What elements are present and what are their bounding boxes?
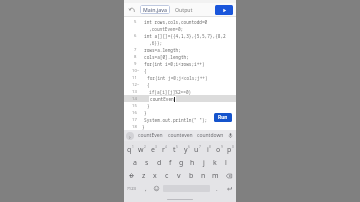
button[interactable]: Undo <box>127 5 137 15</box>
button[interactable]: x <box>149 169 161 182</box>
staticText: for(int i=0;i<rows;i++) <box>144 61 205 67</box>
staticText: 5 <box>134 19 137 25</box>
button[interactable]: c <box>161 169 173 182</box>
staticText: if(a[i][j]%2==0) <box>149 89 192 95</box>
staticText: o <box>216 145 221 155</box>
staticText: 5 <box>176 145 178 149</box>
button[interactable]: ?123 <box>124 182 140 195</box>
staticText: f <box>169 158 172 168</box>
staticText: 8 <box>134 54 137 60</box>
staticText: . <box>216 185 218 193</box>
staticText: Output <box>175 6 193 13</box>
staticText: › <box>129 133 131 140</box>
button[interactable]: , <box>140 182 151 195</box>
button[interactable]: g <box>176 156 187 169</box>
staticText: − <box>137 82 140 87</box>
staticText: Run <box>218 114 228 121</box>
button[interactable]: v <box>173 169 185 182</box>
button[interactable]: m <box>209 169 221 182</box>
staticText: l <box>225 158 227 168</box>
staticText: { <box>147 82 150 88</box>
button[interactable]: a <box>129 156 141 169</box>
button[interactable]: d <box>153 156 165 169</box>
staticText: q <box>127 145 132 155</box>
button[interactable]: y <box>181 143 192 156</box>
staticText: h <box>190 158 195 168</box>
staticText: 16 <box>132 110 137 116</box>
button[interactable]: r <box>159 143 170 156</box>
button[interactable]: Run <box>215 5 233 15</box>
staticText: 0 <box>232 145 234 149</box>
staticText: 2 <box>144 145 146 149</box>
button[interactable]: k <box>209 156 220 169</box>
staticText: 14 <box>132 96 137 102</box>
button[interactable]: Run <box>214 113 232 122</box>
staticText: z <box>142 171 146 181</box>
button[interactable]: j <box>198 156 209 169</box>
staticText: 11 <box>132 75 137 81</box>
staticText: r <box>162 145 165 155</box>
staticText: v <box>177 171 181 181</box>
staticText: b <box>189 171 194 181</box>
staticText: 6 <box>188 145 190 149</box>
staticText: ?123 <box>127 186 137 192</box>
staticText: ,6}}; <box>149 40 163 46</box>
staticText: } <box>147 103 150 109</box>
staticText: w <box>138 145 144 155</box>
staticText: y <box>184 145 188 155</box>
staticText: } <box>144 110 147 116</box>
button[interactable]: Voice input <box>225 130 236 141</box>
button[interactable]: t <box>170 143 181 156</box>
staticText: countEven <box>150 96 174 102</box>
staticText: j <box>203 158 205 168</box>
button[interactable]: Output <box>173 5 195 14</box>
staticText: 3 <box>155 145 157 149</box>
staticText: c <box>165 171 169 181</box>
staticText: t <box>173 145 176 155</box>
button[interactable]: z <box>138 169 149 182</box>
button[interactable]: p <box>225 143 236 156</box>
button[interactable]: Shift <box>124 169 138 182</box>
button[interactable]: Backspace <box>221 169 236 182</box>
button[interactable]: e <box>148 143 159 156</box>
staticText: n <box>201 171 206 181</box>
button[interactable]: Enter <box>222 182 236 195</box>
staticText: d <box>157 158 162 168</box>
button[interactable]: b <box>185 169 197 182</box>
staticText: 6 <box>134 33 137 39</box>
button[interactable]: More suggestions <box>126 132 134 140</box>
staticText: cols=a[0].length; <box>144 54 189 60</box>
staticText: counteven <box>168 132 193 139</box>
button[interactable]: i <box>203 143 214 156</box>
staticText: countEven <box>138 132 163 139</box>
staticText: for(int j=0;j<cols;j++) <box>147 75 208 81</box>
button[interactable]: u <box>192 143 203 156</box>
button[interactable]: s <box>141 156 153 169</box>
staticText: rows=a.length; <box>144 47 181 53</box>
button[interactable]: f <box>165 156 176 169</box>
button[interactable]: w <box>136 143 148 156</box>
staticText: 7 <box>134 47 137 53</box>
staticText: 10 <box>132 68 137 74</box>
staticText: ,countEven=0; <box>149 26 184 32</box>
button[interactable]: . <box>211 182 222 195</box>
button[interactable]: countdown <box>195 130 225 141</box>
button[interactable]: counteven <box>165 130 195 141</box>
button[interactable]: n <box>197 169 209 182</box>
button[interactable]: q <box>124 143 136 156</box>
button[interactable]: l <box>220 156 231 169</box>
staticText: System.out.println(" "); <box>144 117 208 123</box>
button[interactable]: countEven <box>136 130 165 141</box>
button[interactable]: o <box>214 143 225 156</box>
staticText: countdown <box>197 132 224 139</box>
staticText: m <box>212 171 219 181</box>
button[interactable]: Main.java <box>140 5 170 14</box>
button[interactable]: h <box>187 156 198 169</box>
staticText: 13 <box>132 89 137 95</box>
staticText: i <box>207 145 209 155</box>
staticText: k <box>213 158 217 168</box>
button[interactable]: Emoji <box>151 182 162 195</box>
staticText: 7 <box>199 145 201 149</box>
staticText: { <box>144 68 147 74</box>
